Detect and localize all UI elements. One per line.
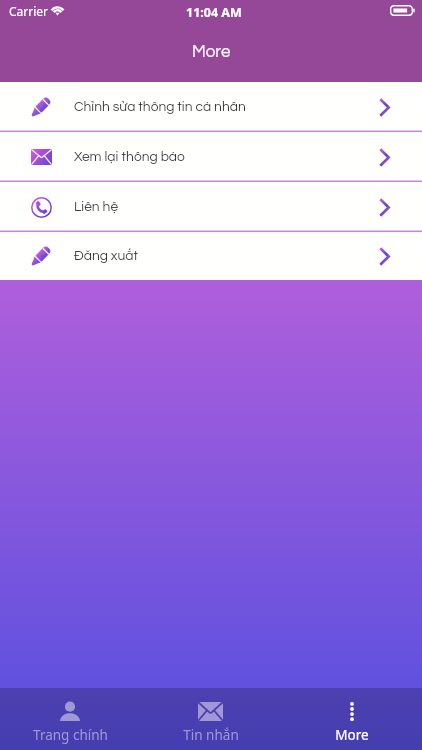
staticText: More: [192, 43, 231, 61]
staticText: Tin nhắn: [183, 726, 239, 744]
staticText: More: [335, 726, 369, 744]
button[interactable]: Trang chính: [0, 688, 140, 750]
button[interactable]: More: [281, 688, 422, 750]
staticText: Carrier: [9, 3, 49, 19]
staticText: Liên hệ: [74, 200, 119, 214]
button[interactable]: Liên hệ: [0, 182, 422, 232]
button[interactable]: Xem lại thông báo: [0, 132, 422, 182]
staticText: Chỉnh sửa thông tin cá nhân: [74, 100, 246, 114]
staticText: Trang chính: [33, 726, 108, 744]
button[interactable]: Chỉnh sửa thông tin cá nhân: [0, 82, 422, 132]
staticText: Xem lại thông báo: [74, 150, 185, 164]
staticText: 11:04 AM: [186, 4, 242, 21]
button[interactable]: Tin nhắn: [140, 688, 281, 750]
button[interactable]: Đăng xuất: [0, 232, 422, 280]
staticText: Đăng xuất: [74, 249, 139, 263]
